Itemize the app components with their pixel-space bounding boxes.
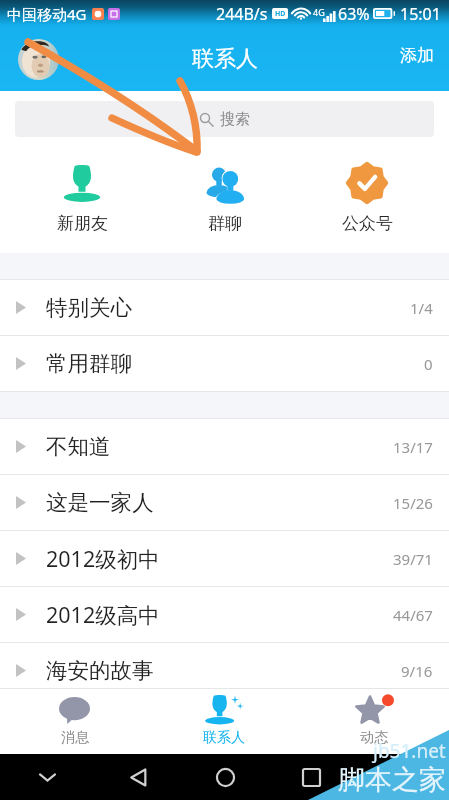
staticText: 15:01 — [400, 3, 441, 25]
staticText: 244B/s — [216, 3, 268, 25]
button[interactable]: Profile avatar — [18, 39, 59, 80]
staticText: 特别关心 — [46, 294, 132, 321]
button[interactable]: 新朋友 — [22, 146, 142, 234]
staticText: 新朋友 — [57, 213, 108, 234]
button[interactable]: 不知道 — [0, 419, 449, 475]
button[interactable]: 这是一家人 — [0, 475, 449, 531]
staticText: 13/17 — [393, 437, 433, 457]
button[interactable]: 动态 — [299, 689, 449, 754]
staticText: 1/4 — [410, 298, 433, 318]
staticText: 群聊 — [208, 213, 242, 234]
staticText: 联系人 — [192, 45, 258, 73]
staticText: 脚本之家 — [338, 763, 446, 797]
button[interactable]: 消息 — [0, 689, 149, 754]
button[interactable]: 常用群聊 — [0, 336, 449, 392]
button[interactable]: 2012级高中 — [0, 587, 449, 643]
staticText: 中国移动4G — [7, 4, 87, 24]
staticText: 搜索 — [220, 110, 250, 129]
staticText: 9/16 — [401, 661, 433, 681]
staticText: 2012级高中 — [46, 600, 160, 629]
staticText: 消息 — [61, 729, 89, 747]
staticText: 39/71 — [393, 549, 433, 569]
button[interactable]: 添加 — [385, 34, 449, 77]
button[interactable]: 2012级初中 — [0, 531, 449, 587]
staticText: 44/67 — [393, 605, 433, 625]
staticText: 海安的故事 — [46, 657, 154, 684]
button[interactable]: 联系人 — [149, 689, 299, 754]
staticText: HD — [275, 9, 286, 19]
button[interactable]: 公众号 — [307, 146, 427, 234]
staticText: 4G — [313, 6, 325, 18]
staticText: 动态 — [360, 729, 388, 747]
staticText: 常用群聊 — [46, 350, 132, 377]
staticText: 公众号 — [342, 213, 393, 234]
staticText: 联系人 — [203, 729, 245, 747]
staticText: 2012级初中 — [46, 544, 160, 573]
button[interactable]: 特别关心 — [0, 280, 449, 336]
staticText: 这是一家人 — [46, 489, 154, 516]
button[interactable]: 搜索 — [15, 101, 434, 137]
button[interactable]: 群聊 — [165, 146, 285, 234]
staticText: jb51.net — [373, 738, 446, 764]
staticText: 不知道 — [46, 433, 111, 460]
button[interactable]: 海安的故事 — [0, 643, 449, 699]
staticText: 0 — [424, 354, 433, 374]
staticText: 63% — [338, 3, 370, 25]
staticText: 添加 — [400, 45, 434, 66]
staticText: 15/26 — [393, 493, 433, 513]
